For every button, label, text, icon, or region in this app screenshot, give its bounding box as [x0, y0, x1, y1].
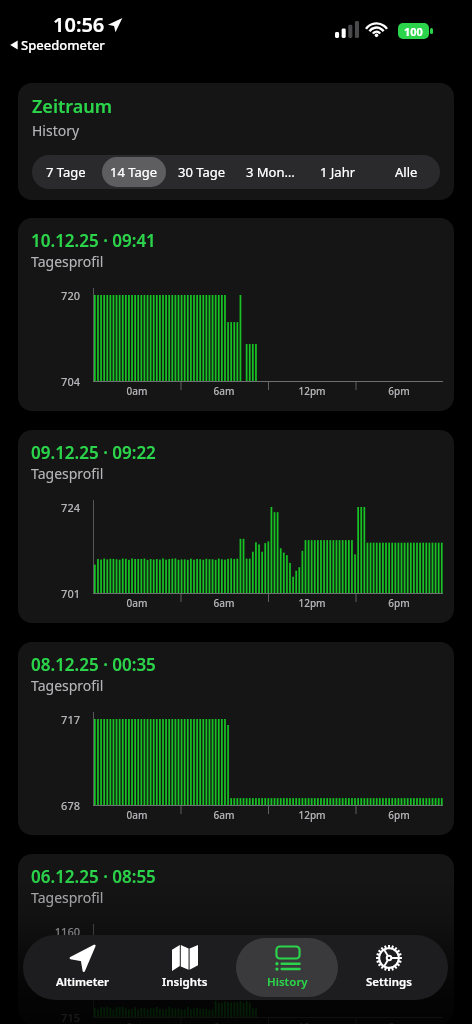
button[interactable]: 14 Tage — [102, 157, 166, 187]
staticText: Tagesprofil — [31, 676, 104, 695]
button[interactable]: 3 Mon… — [238, 157, 302, 187]
staticText: 10:56 — [53, 11, 105, 38]
staticText: 704 — [30, 374, 80, 389]
staticText: 678 — [30, 798, 80, 813]
staticText: 717 — [30, 712, 80, 727]
staticText: 0am — [112, 596, 162, 610]
staticText: 30 Tage — [178, 163, 226, 181]
staticText: 6pm — [374, 808, 424, 822]
staticText: 100 — [404, 24, 423, 39]
button[interactable]: 08.12.25 · 00:35 — [18, 642, 454, 835]
staticText: Tagesprofil — [31, 252, 104, 271]
staticText: 12pm — [287, 808, 337, 822]
staticText: 6pm — [374, 384, 424, 398]
button[interactable]: 7 Tage — [34, 157, 98, 187]
button[interactable]: 09.12.25 · 09:22 — [18, 430, 454, 623]
staticText: 724 — [30, 500, 80, 515]
staticText: Tagesprofil — [31, 464, 104, 483]
staticText: History — [267, 974, 308, 990]
staticText: 6am — [199, 384, 249, 398]
staticText: Speedometer — [21, 36, 105, 54]
staticText: 7 Tage — [46, 163, 86, 181]
button[interactable]: 30 Tage — [170, 157, 234, 187]
button[interactable]: Insights — [134, 938, 236, 997]
button[interactable]: 10.12.25 · 09:41 — [18, 218, 454, 411]
staticText: Alle — [395, 163, 418, 181]
staticText: 09.12.25 · 09:22 — [31, 441, 156, 464]
staticText: 720 — [30, 288, 80, 303]
button[interactable]: Altimeter — [31, 938, 134, 997]
staticText: 3 Mon… — [246, 163, 295, 181]
button[interactable]: 1 Jahr — [306, 157, 370, 187]
staticText: 6am — [199, 808, 249, 822]
staticText: 6am — [199, 596, 249, 610]
staticText: 06.12.25 · 08:55 — [31, 865, 156, 888]
button[interactable]: History — [236, 938, 338, 997]
button[interactable]: Alle — [374, 157, 438, 187]
staticText: 715 — [30, 1010, 80, 1024]
staticText: 0am — [112, 808, 162, 822]
staticText: 0am — [112, 384, 162, 398]
staticText: 12pm — [287, 596, 337, 610]
staticText: 1160 — [30, 924, 80, 939]
staticText: Tagesprofil — [31, 888, 104, 907]
button[interactable]: 06.12.25 · 08:55 — [18, 854, 454, 1024]
staticText: History — [32, 121, 80, 140]
staticText: 14 Tage — [110, 163, 158, 181]
staticText: 1 Jahr — [320, 163, 356, 181]
staticText: Insights — [162, 974, 208, 990]
button[interactable]: Settings — [338, 938, 440, 997]
staticText: Altimeter — [56, 974, 110, 990]
staticText: 08.12.25 · 00:35 — [31, 653, 156, 676]
staticText: 6pm — [374, 596, 424, 610]
staticText: 10.12.25 · 09:41 — [31, 229, 156, 252]
staticText: Zeitraum — [32, 94, 113, 119]
staticText: 701 — [30, 586, 80, 601]
staticText: Settings — [366, 974, 412, 990]
staticText: 12pm — [287, 384, 337, 398]
